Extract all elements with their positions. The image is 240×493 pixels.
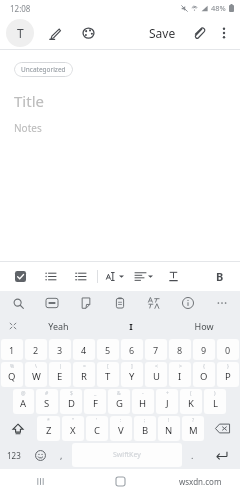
button[interactable]: Checklist bbox=[10, 266, 30, 286]
staticText: X bbox=[70, 424, 76, 437]
button[interactable]: Stickers bbox=[76, 293, 96, 313]
button[interactable]: ; bbox=[134, 416, 156, 441]
button[interactable]: $ bbox=[60, 389, 82, 414]
staticText: 8 bbox=[177, 344, 183, 356]
button[interactable]: # bbox=[36, 389, 58, 414]
button[interactable]: * bbox=[37, 416, 60, 441]
button[interactable]: Numbered list bbox=[70, 266, 90, 286]
button[interactable]: - bbox=[132, 389, 154, 414]
staticText: H bbox=[139, 397, 147, 410]
button[interactable]: 7 bbox=[145, 339, 167, 360]
button[interactable]: % bbox=[1, 362, 23, 387]
button[interactable]: Save bbox=[143, 19, 182, 47]
button[interactable]: , bbox=[53, 443, 70, 467]
staticText: 123 bbox=[7, 450, 21, 461]
staticText: { bbox=[203, 363, 205, 370]
button[interactable]: | bbox=[49, 362, 71, 387]
button[interactable]: { bbox=[193, 362, 215, 387]
button[interactable]: 5 bbox=[97, 339, 119, 360]
staticText: 4 bbox=[81, 344, 87, 356]
button[interactable]: Underline bbox=[163, 266, 183, 286]
button[interactable]: Search bbox=[8, 293, 28, 313]
button[interactable]: } bbox=[217, 362, 239, 387]
staticText: I bbox=[129, 320, 133, 332]
button[interactable]: ) bbox=[204, 389, 226, 414]
staticText: Save bbox=[149, 25, 176, 41]
button[interactable]: = bbox=[73, 362, 95, 387]
button[interactable]: [ bbox=[97, 362, 119, 387]
staticText: 0 bbox=[225, 344, 231, 356]
button[interactable]: ' bbox=[86, 416, 108, 441]
button[interactable]: > bbox=[169, 362, 191, 387]
staticText: * bbox=[47, 417, 50, 424]
button[interactable]: Alignment bbox=[134, 266, 154, 286]
staticText: 3 bbox=[57, 344, 63, 356]
button[interactable]: & bbox=[108, 389, 130, 414]
button[interactable]: ? bbox=[182, 416, 204, 441]
button[interactable]: < bbox=[145, 362, 167, 387]
button[interactable]: 6 bbox=[121, 339, 143, 360]
staticText: G bbox=[116, 397, 123, 410]
button[interactable]: Space bbox=[72, 443, 182, 467]
staticText: . bbox=[191, 449, 194, 461]
staticText: 5 bbox=[105, 344, 111, 356]
button[interactable]: B bbox=[210, 266, 230, 286]
staticText: : bbox=[120, 417, 122, 424]
button[interactable]: Uncategorized bbox=[14, 62, 73, 77]
staticText: T bbox=[105, 370, 111, 383]
button[interactable]: 2 bbox=[25, 339, 47, 360]
button[interactable]: Palette bbox=[74, 19, 102, 47]
button[interactable]: How bbox=[167, 315, 240, 337]
staticText: Z bbox=[46, 424, 52, 437]
button[interactable]: Yeah bbox=[22, 315, 94, 337]
staticText: - bbox=[142, 390, 144, 397]
button[interactable]: Translate bbox=[144, 293, 164, 313]
staticText: F bbox=[93, 397, 98, 410]
staticText: # bbox=[45, 390, 49, 397]
button[interactable]: Attach bbox=[186, 20, 212, 46]
button[interactable]: : bbox=[110, 416, 132, 441]
button[interactable]: + bbox=[156, 389, 178, 414]
button[interactable]: 1 bbox=[1, 339, 23, 360]
button[interactable]: Backspace bbox=[206, 416, 239, 441]
staticText: Notes bbox=[14, 121, 42, 135]
button[interactable]: 8 bbox=[169, 339, 191, 360]
button[interactable]: Info bbox=[178, 293, 198, 313]
button[interactable]: " bbox=[62, 416, 84, 441]
button[interactable]: 9 bbox=[193, 339, 215, 360]
button[interactable]: Emoji bbox=[29, 443, 51, 467]
staticText: P bbox=[225, 370, 231, 383]
button[interactable]: @ bbox=[13, 389, 34, 414]
staticText: I bbox=[178, 370, 182, 383]
button[interactable]: 123 bbox=[1, 443, 27, 467]
button[interactable]: 3 bbox=[49, 339, 71, 360]
button[interactable]: 0 bbox=[217, 339, 239, 360]
button[interactable]: . bbox=[184, 443, 201, 467]
button[interactable]: ! bbox=[158, 416, 180, 441]
button[interactable]: Shift bbox=[1, 416, 35, 441]
staticText: 1 bbox=[9, 344, 15, 356]
staticText: [ bbox=[107, 363, 109, 370]
button[interactable]: Draw bbox=[40, 19, 68, 47]
button[interactable]: More bbox=[212, 293, 232, 313]
staticText: Yeah bbox=[48, 320, 69, 332]
button[interactable]: Bulleted list bbox=[40, 266, 60, 286]
button[interactable]: Expand suggestions bbox=[6, 319, 20, 333]
button[interactable]: ] bbox=[121, 362, 143, 387]
button[interactable]: Text mode bbox=[6, 19, 34, 47]
button[interactable]: Text size bbox=[105, 266, 125, 286]
staticText: 9 bbox=[201, 344, 207, 356]
button[interactable]: Clipboard bbox=[110, 293, 130, 313]
button[interactable]: ( bbox=[180, 389, 202, 414]
button[interactable]: I bbox=[94, 315, 167, 337]
button[interactable]: 4 bbox=[73, 339, 95, 360]
button[interactable]: _ bbox=[84, 389, 106, 414]
button[interactable]: Back bbox=[160, 469, 240, 493]
button[interactable]: Home bbox=[80, 469, 160, 493]
staticText: Uncategorized bbox=[21, 65, 66, 74]
button[interactable]: GIF bbox=[42, 293, 62, 313]
button[interactable]: Recents bbox=[0, 469, 80, 493]
button[interactable]: More options bbox=[212, 21, 236, 45]
button[interactable]: Enter bbox=[203, 443, 239, 467]
button[interactable]: \ bbox=[25, 362, 47, 387]
